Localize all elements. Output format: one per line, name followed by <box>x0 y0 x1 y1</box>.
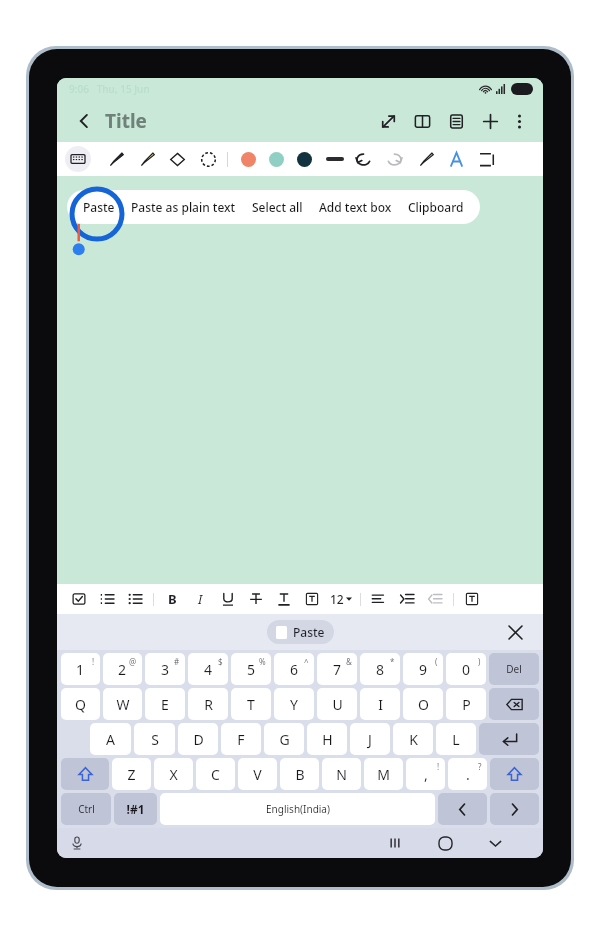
button[interactable]: Bulleted list <box>121 585 149 613</box>
button[interactable]: Bold <box>158 585 186 613</box>
button[interactable]: Keyboard <box>65 146 91 172</box>
button[interactable]: Voice input <box>67 833 87 853</box>
button[interactable]: K <box>393 723 433 755</box>
button[interactable]: E <box>145 688 185 720</box>
button[interactable]: 3 <box>145 653 185 685</box>
button[interactable]: Book view <box>405 104 439 138</box>
button[interactable]: English(India) <box>160 793 435 825</box>
button[interactable]: Expand <box>371 104 405 138</box>
button[interactable]: Pen <box>100 144 131 174</box>
button[interactable]: Text box <box>458 585 486 613</box>
button[interactable]: 12 <box>326 591 356 607</box>
button[interactable]: Hide keyboard <box>483 831 507 855</box>
button[interactable]: G <box>264 723 304 755</box>
button[interactable]: More options <box>507 104 531 138</box>
staticText: T <box>247 695 255 714</box>
button[interactable]: T <box>231 688 271 720</box>
button[interactable]: Next <box>490 793 539 825</box>
button[interactable]: Italic <box>186 585 214 613</box>
button[interactable]: 8 <box>360 653 400 685</box>
button[interactable]: C <box>196 758 235 790</box>
button[interactable]: N <box>322 758 361 790</box>
button[interactable]: Y <box>274 688 314 720</box>
button[interactable]: Highlighter <box>131 144 162 174</box>
button[interactable]: Orange colour <box>234 145 262 173</box>
button[interactable]: Eraser <box>162 144 193 174</box>
button[interactable]: Ctrl <box>61 793 111 825</box>
button[interactable]: Close <box>503 620 527 644</box>
button[interactable]: F <box>221 723 261 755</box>
button[interactable]: , <box>406 758 445 790</box>
button[interactable]: A <box>90 723 131 755</box>
button[interactable]: X <box>154 758 193 790</box>
button[interactable]: Strikethrough <box>242 585 270 613</box>
button[interactable]: Z <box>112 758 151 790</box>
button[interactable]: Clipboard <box>398 190 480 224</box>
button[interactable]: I <box>360 688 400 720</box>
staticText: Del <box>506 662 522 676</box>
button[interactable]: Marker <box>410 144 441 174</box>
button[interactable]: V <box>238 758 277 790</box>
button[interactable]: Del <box>489 653 539 685</box>
button[interactable]: Text colour <box>270 585 298 613</box>
staticText: Title <box>105 108 147 134</box>
staticText: C <box>211 765 220 784</box>
button[interactable]: 6 <box>274 653 314 685</box>
button[interactable]: B <box>280 758 319 790</box>
button[interactable]: Enter <box>479 723 539 755</box>
button[interactable]: Paste as plain text <box>121 190 242 224</box>
button[interactable]: Recents <box>383 831 407 855</box>
button[interactable]: Notes list <box>439 104 473 138</box>
button[interactable]: D <box>178 723 218 755</box>
button[interactable]: Decrease indent <box>421 585 449 613</box>
button[interactable]: H <box>307 723 347 755</box>
button[interactable]: S <box>134 723 175 755</box>
button[interactable]: Selection <box>193 144 224 174</box>
button[interactable]: 9 <box>403 653 443 685</box>
button[interactable]: O <box>403 688 443 720</box>
button[interactable]: Paste <box>67 190 121 224</box>
button[interactable]: Select all <box>242 190 309 224</box>
button[interactable]: Shift right <box>490 758 539 790</box>
button[interactable]: Teal colour <box>262 145 290 173</box>
button[interactable]: Numbered list <box>93 585 121 613</box>
button[interactable]: Shift <box>61 758 109 790</box>
button[interactable]: 2 <box>103 653 142 685</box>
button[interactable]: M <box>364 758 403 790</box>
staticText: , <box>424 765 428 784</box>
button[interactable]: Text conversion <box>472 144 503 174</box>
button[interactable]: Undo <box>348 144 379 174</box>
button[interactable]: Q <box>61 688 100 720</box>
button[interactable]: Increase indent <box>393 585 421 613</box>
button[interactable]: Paste <box>267 620 334 644</box>
button[interactable]: 0 <box>446 653 486 685</box>
button[interactable]: Previous <box>438 793 487 825</box>
button[interactable]: R <box>188 688 228 720</box>
button[interactable]: Add text box <box>309 190 398 224</box>
button[interactable]: Dark colour <box>290 145 318 173</box>
button[interactable]: 7 <box>317 653 357 685</box>
button[interactable]: Home <box>433 831 457 855</box>
staticText: B <box>295 765 305 784</box>
button[interactable]: Stroke width <box>322 148 348 170</box>
button[interactable]: L <box>436 723 476 755</box>
button[interactable]: Highlight <box>298 585 326 613</box>
button[interactable]: 4 <box>188 653 228 685</box>
button[interactable]: Checklist <box>65 585 93 613</box>
button[interactable]: 5 <box>231 653 271 685</box>
button[interactable]: U <box>317 688 357 720</box>
button[interactable]: Back <box>69 106 99 136</box>
button[interactable]: J <box>350 723 390 755</box>
button[interactable]: Underline <box>214 585 242 613</box>
button[interactable]: Alignment <box>365 585 393 613</box>
button[interactable]: !#1 <box>114 793 157 825</box>
button[interactable]: Shape recognition <box>441 144 472 174</box>
button[interactable]: W <box>103 688 142 720</box>
button[interactable]: Backspace <box>489 688 539 720</box>
button[interactable]: Redo <box>379 144 410 174</box>
staticText: D <box>193 730 204 749</box>
button[interactable]: P <box>446 688 486 720</box>
button[interactable]: 1 <box>61 653 100 685</box>
button[interactable]: . <box>448 758 487 790</box>
button[interactable]: Add <box>473 104 507 138</box>
